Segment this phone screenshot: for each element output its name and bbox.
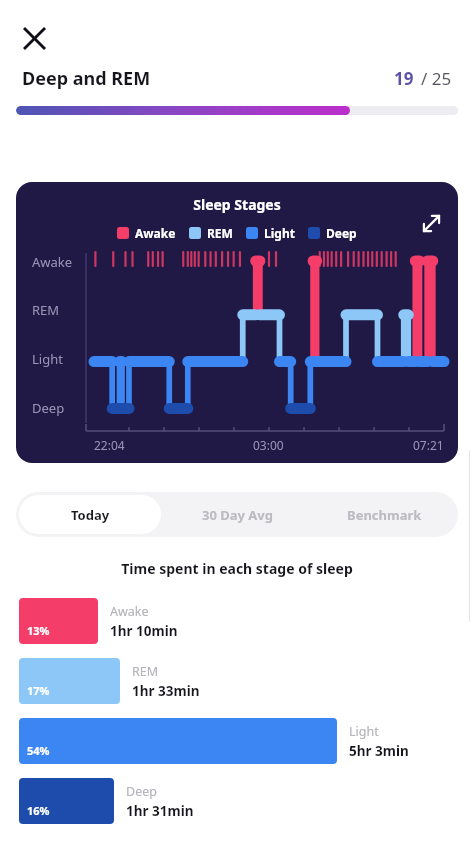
staticText: Deep — [32, 399, 65, 417]
button[interactable]: 16% — [0, 778, 474, 824]
staticText: 5hr 3min — [349, 742, 409, 760]
staticText: Deep and REM — [22, 66, 151, 91]
staticText: 17% — [27, 683, 50, 698]
staticText: REM — [207, 225, 233, 241]
staticText: 07:21 — [413, 437, 444, 453]
button[interactable]: Expand chart — [414, 206, 448, 240]
button[interactable]: Today — [19, 495, 161, 534]
staticText: Awake — [135, 225, 176, 241]
staticText: Awake — [32, 253, 73, 271]
button[interactable]: 30 Day Avg — [164, 492, 311, 537]
staticText: 1hr 33min — [132, 682, 200, 700]
button[interactable]: 17% — [0, 658, 474, 704]
button[interactable]: Close — [12, 16, 56, 60]
staticText: Today — [71, 506, 110, 524]
staticText: 13% — [27, 623, 50, 638]
staticText: REM — [132, 663, 159, 680]
button[interactable]: 54% — [0, 718, 474, 764]
button[interactable]: Benchmark — [311, 492, 458, 537]
staticText: / 25 — [421, 67, 452, 90]
staticText: Time spent in each stage of sleep — [0, 559, 474, 578]
staticText: 54% — [27, 743, 50, 758]
staticText: Sleep Stages — [16, 195, 458, 214]
staticText: Awake — [110, 603, 149, 620]
staticText: Light — [264, 225, 295, 241]
staticText: Light — [32, 350, 63, 368]
staticText: Deep — [326, 225, 357, 241]
staticText: Deep — [126, 783, 157, 800]
staticText: Benchmark — [347, 506, 422, 524]
staticText: 1hr 10min — [110, 622, 178, 640]
staticText: Light — [349, 723, 379, 740]
staticText: 19 — [394, 67, 414, 90]
staticText: REM — [32, 301, 60, 319]
staticText: 03:00 — [253, 437, 284, 453]
staticText: 1hr 31min — [126, 802, 194, 820]
staticText: 22:04 — [94, 437, 125, 453]
button[interactable]: 13% — [0, 598, 474, 644]
staticText: 16% — [27, 803, 50, 818]
staticText: 30 Day Avg — [202, 506, 273, 524]
